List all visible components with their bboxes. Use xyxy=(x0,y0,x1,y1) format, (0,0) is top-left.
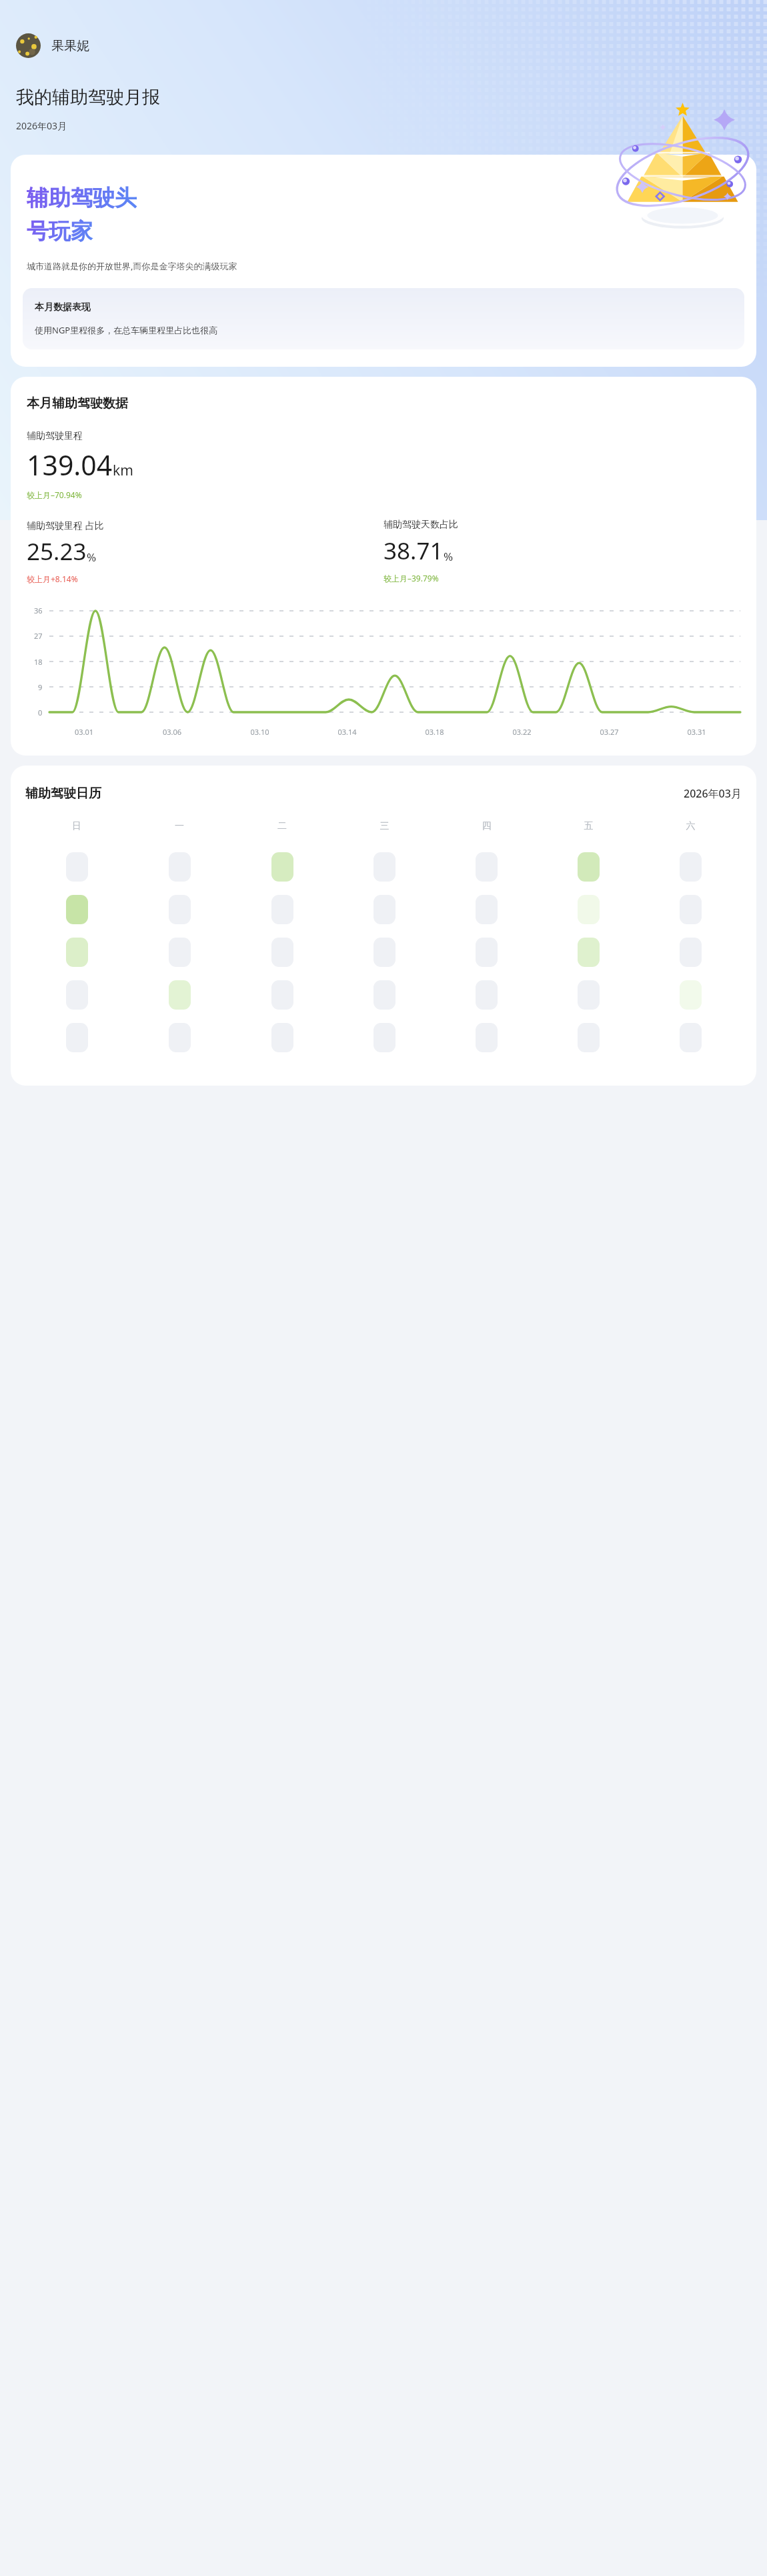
button[interactable] xyxy=(680,852,702,882)
staticText: 03.27 xyxy=(566,727,653,737)
button[interactable] xyxy=(271,1023,293,1052)
other: Pyramid trophy illustration xyxy=(614,100,751,237)
staticText: 2026年03月 xyxy=(16,119,67,132)
staticText: 25.23 xyxy=(27,535,87,567)
button[interactable]: 辅助驾驶日历 xyxy=(11,766,756,1086)
staticText: km xyxy=(113,461,133,480)
button[interactable] xyxy=(680,980,702,1010)
button[interactable] xyxy=(578,852,600,882)
button[interactable] xyxy=(271,938,293,967)
staticText: 较上月+8.14% xyxy=(27,573,78,584)
staticText: 辅助驾驶日历 xyxy=(25,786,101,802)
button[interactable] xyxy=(578,1023,600,1052)
button[interactable] xyxy=(578,938,600,967)
button[interactable] xyxy=(169,852,191,882)
staticText: 号玩家 xyxy=(27,217,93,245)
button[interactable] xyxy=(373,1023,396,1052)
staticText: 03.10 xyxy=(216,727,303,737)
button[interactable] xyxy=(373,938,396,967)
button[interactable] xyxy=(373,895,396,924)
staticText: 果果妮 xyxy=(51,38,89,54)
staticText: 辅助驾驶天数占比 xyxy=(383,519,458,531)
staticText: 较上月–70.94% xyxy=(27,489,82,500)
button[interactable] xyxy=(66,1023,88,1052)
button[interactable] xyxy=(680,938,702,967)
button[interactable] xyxy=(578,980,600,1010)
button[interactable]: 辅助驾驶里程 占比 xyxy=(27,519,383,584)
staticText: 36 xyxy=(34,605,43,615)
button[interactable] xyxy=(680,895,702,924)
button[interactable] xyxy=(373,852,396,882)
staticText: 四 xyxy=(436,820,538,832)
staticText: 辅助驾驶里程 占比 xyxy=(27,519,104,531)
staticText: 我的辅助驾驶月报 xyxy=(16,86,160,109)
staticText: 9 xyxy=(38,682,43,692)
button[interactable]: 辅助驾驶头 xyxy=(11,155,756,367)
staticText: 0 xyxy=(38,708,43,718)
button[interactable] xyxy=(169,895,191,924)
button[interactable]: 辅助驾驶天数占比 xyxy=(383,519,740,583)
staticText: 03.22 xyxy=(478,727,566,737)
button[interactable] xyxy=(169,938,191,967)
staticText: % xyxy=(444,549,454,564)
button[interactable]: Profile avatar xyxy=(16,33,89,58)
button[interactable] xyxy=(476,852,498,882)
button[interactable] xyxy=(271,980,293,1010)
staticText: 27 xyxy=(34,631,43,641)
button[interactable] xyxy=(169,980,191,1010)
button[interactable] xyxy=(66,980,88,1010)
staticText: 日 xyxy=(25,820,128,832)
button[interactable]: 本月辅助驾驶数据 xyxy=(11,377,756,756)
staticText: 使用NGP里程很多，在总车辆里程里占比也很高 xyxy=(35,324,218,336)
button[interactable] xyxy=(476,895,498,924)
other: Profile avatar xyxy=(16,33,41,58)
staticText: 辅助驾驶头 xyxy=(27,184,137,212)
staticText: 18 xyxy=(34,657,43,667)
staticText: 二 xyxy=(231,820,333,832)
staticText: 03.18 xyxy=(391,727,478,737)
button[interactable] xyxy=(373,980,396,1010)
button[interactable] xyxy=(66,852,88,882)
staticText: 一 xyxy=(128,820,231,832)
staticText: 三 xyxy=(333,820,436,832)
staticText: 五 xyxy=(538,820,640,832)
staticText: 本月数据表现 xyxy=(35,301,91,313)
staticText: 03.14 xyxy=(303,727,391,737)
staticText: 139.04 xyxy=(27,446,113,483)
button[interactable] xyxy=(476,980,498,1010)
staticText: 城市道路就是你的开放世界,而你是金字塔尖的满级玩家 xyxy=(27,260,237,272)
button[interactable] xyxy=(476,938,498,967)
button[interactable] xyxy=(476,1023,498,1052)
staticText: 六 xyxy=(640,820,742,832)
staticText: % xyxy=(87,549,97,565)
button[interactable] xyxy=(271,852,293,882)
staticText: 38.71 xyxy=(383,535,444,567)
staticText: 03.31 xyxy=(653,727,740,737)
staticText: 较上月–39.79% xyxy=(383,573,439,583)
button[interactable] xyxy=(169,1023,191,1052)
staticText: 本月辅助驾驶数据 xyxy=(27,395,128,411)
button[interactable] xyxy=(66,938,88,967)
staticText: 辅助驾驶里程 xyxy=(27,430,83,442)
staticText: 03.01 xyxy=(40,727,128,737)
staticText: 2026年03月 xyxy=(684,786,742,801)
button[interactable] xyxy=(680,1023,702,1052)
button[interactable] xyxy=(66,895,88,924)
button[interactable] xyxy=(578,895,600,924)
staticText: 03.06 xyxy=(128,727,216,737)
button[interactable] xyxy=(271,895,293,924)
